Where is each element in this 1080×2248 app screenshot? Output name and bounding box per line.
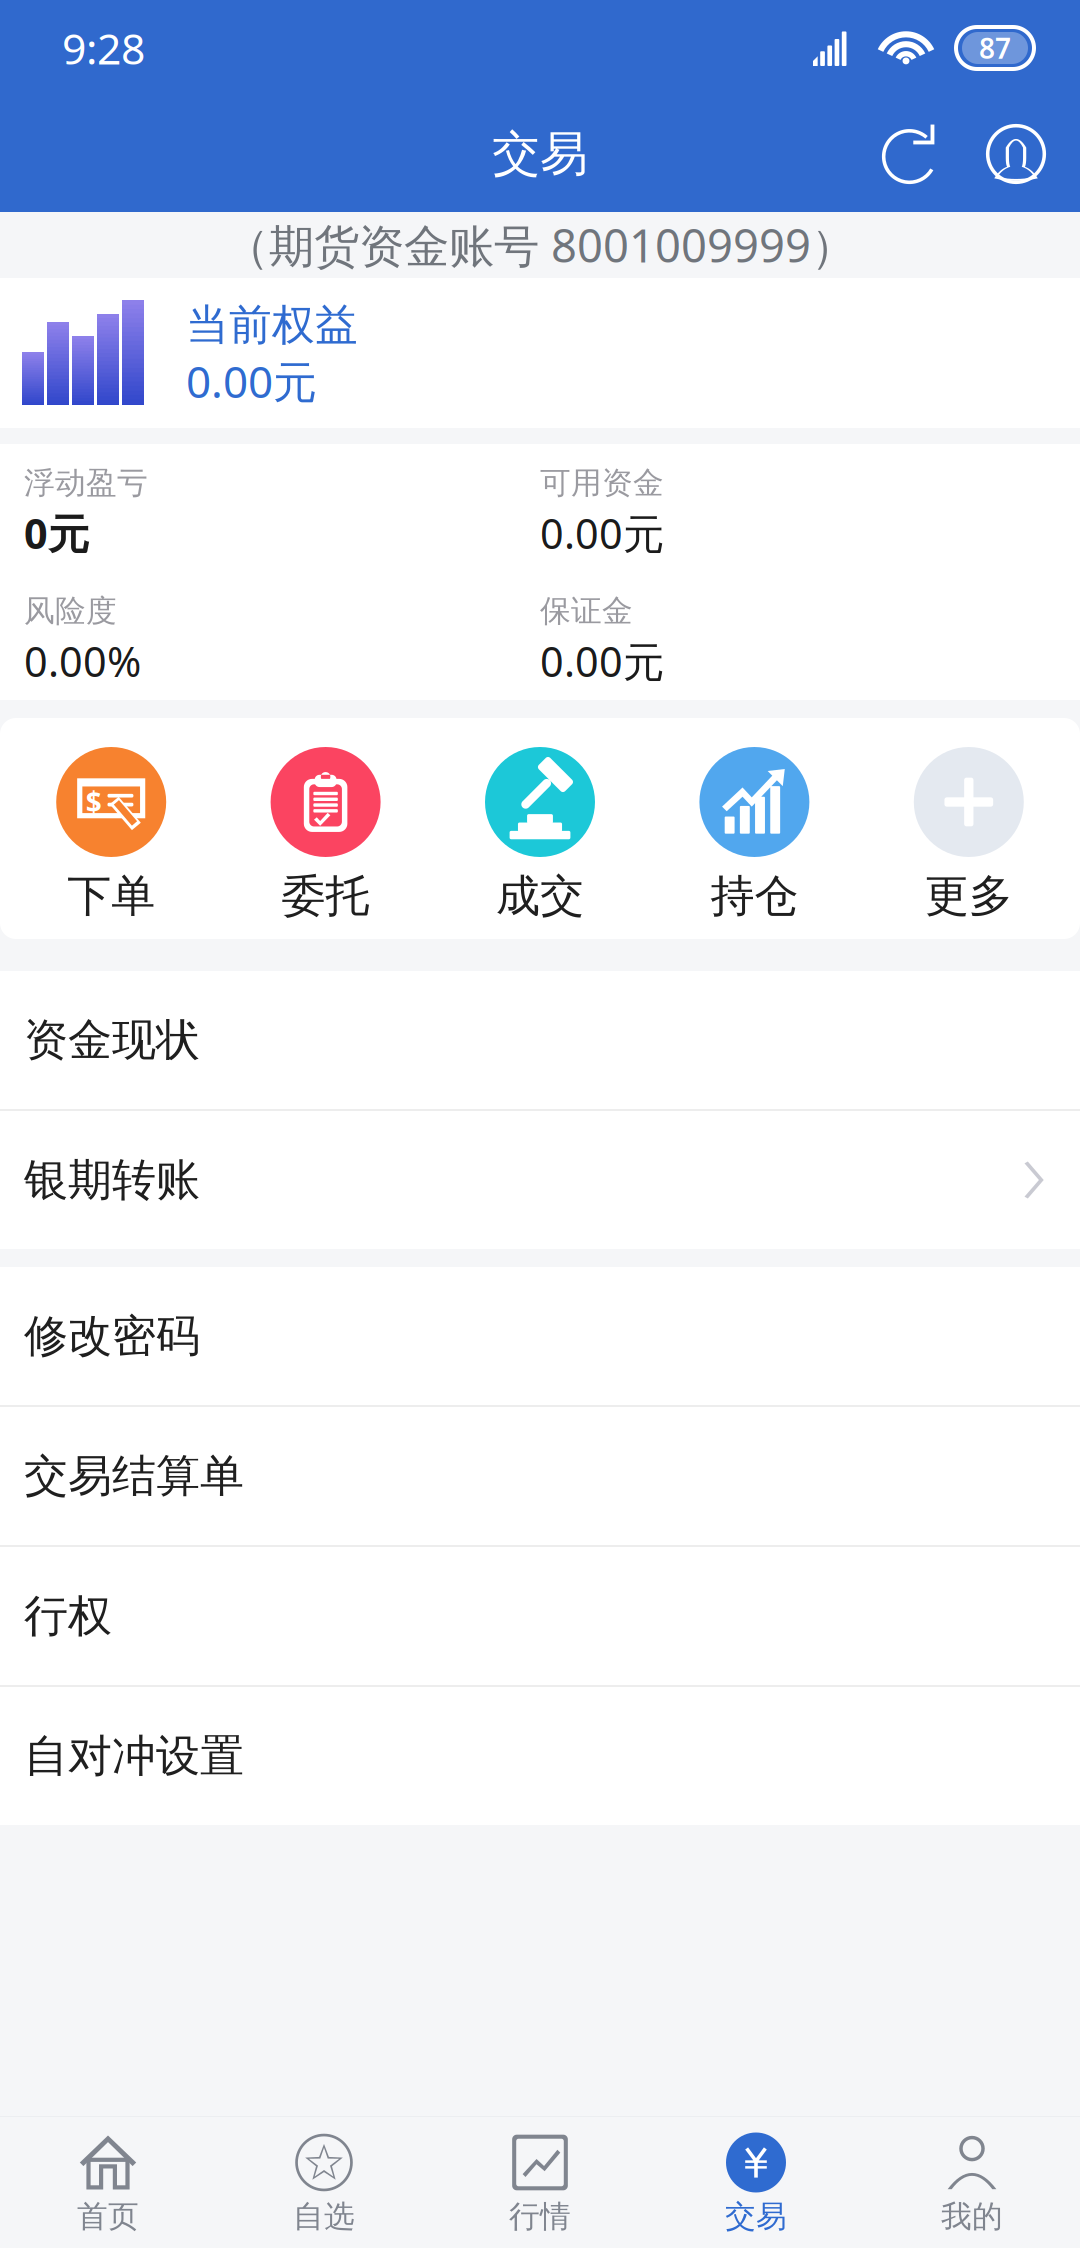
button[interactable]: 资金现状 [0,971,1080,1109]
staticText: 下单 [67,869,155,923]
staticText: $ [86,783,102,820]
staticText: 0.00元 [186,352,317,410]
staticText: 银期转账 [24,1153,200,1207]
staticText: 资金现状 [24,1013,200,1067]
button[interactable]: 交易 [648,2116,864,2248]
button[interactable]: 持仓 [647,718,862,939]
staticText: 可用资金 [540,464,664,502]
button[interactable]: 更多 [862,718,1076,939]
staticText: 87 [979,29,1011,67]
staticText: 0元 [24,506,89,560]
staticText: 持仓 [710,869,798,923]
staticText: 交易 [725,2198,787,2235]
staticText: 更多 [925,869,1013,923]
button[interactable]: 自对冲设置 [0,1687,1080,1825]
staticText: 交易 [492,124,588,183]
staticText: 行情 [509,2198,571,2235]
staticText: 委托 [282,869,370,923]
staticText: 我的 [941,2198,1003,2235]
staticText: 浮动盈亏 [24,464,148,502]
button[interactable]: 交易结算单 [0,1407,1080,1545]
button[interactable]: 刷新 [860,96,964,212]
staticText: 0.00元 [540,634,664,688]
staticText: 0.00元 [540,506,664,560]
button[interactable]: 我的 [864,2116,1080,2248]
staticText: 首页 [77,2198,139,2235]
staticText: 交易结算单 [24,1449,244,1503]
button[interactable]: 成交 [433,718,647,939]
button[interactable]: 银期转账 [0,1111,1080,1249]
staticText: （期货资金账号 8001009999） [224,215,856,275]
staticText: 自对冲设置 [24,1729,244,1783]
staticText: 自选 [293,2198,355,2235]
staticText: 当前权益 [186,299,358,351]
button[interactable]: 自选 [216,2116,432,2248]
staticText: 行权 [24,1589,112,1643]
button[interactable]: 修改密码 [0,1267,1080,1405]
button[interactable]: 委托 [218,718,433,939]
staticText: 修改密码 [24,1309,200,1363]
staticText: 保证金 [540,592,633,630]
staticText: 0.00% [24,634,141,688]
button[interactable]: 行权 [0,1547,1080,1685]
staticText: 9:28 [62,20,145,76]
staticText: 成交 [496,869,584,923]
button[interactable]: 首页 [0,2116,216,2248]
button[interactable]: 行情 [432,2116,648,2248]
staticText: 风险度 [24,592,117,630]
button[interactable]: 账户 [964,96,1068,212]
button[interactable]: $ [4,718,218,939]
